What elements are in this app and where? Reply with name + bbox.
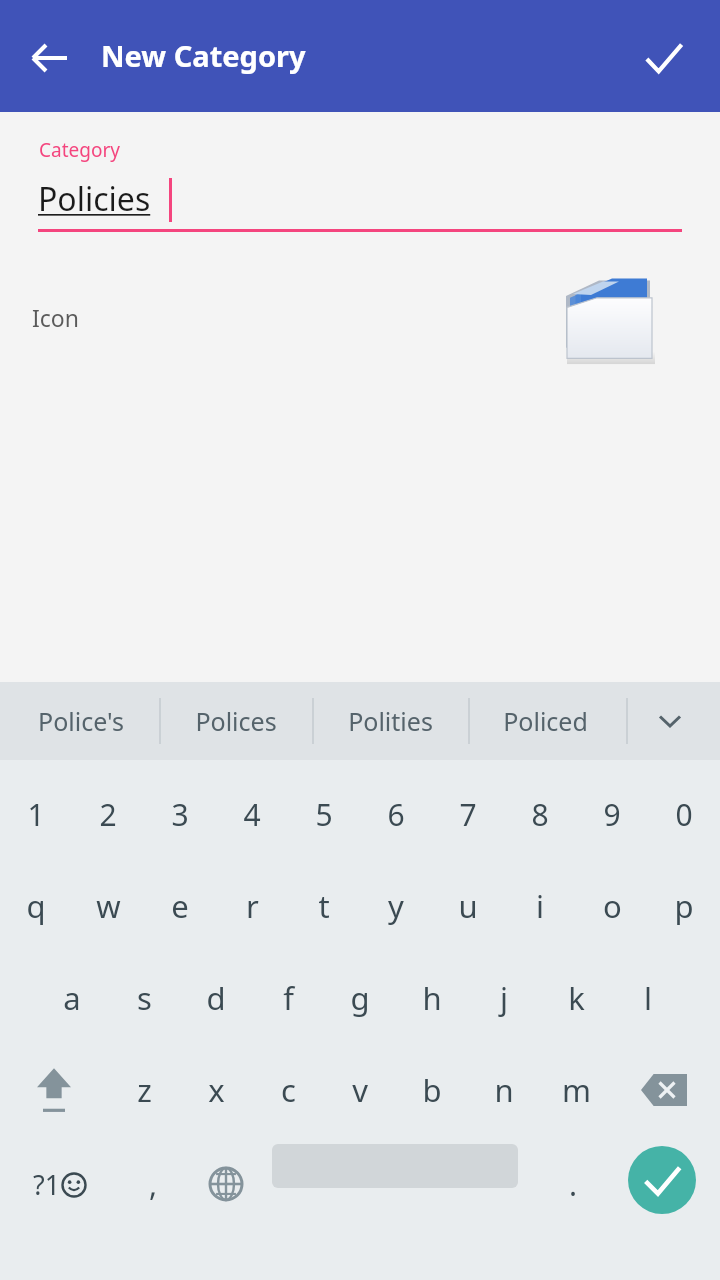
button[interactable]: 1 [0,768,72,860]
button[interactable]: Backspace [616,1044,712,1136]
staticText: s [137,977,152,1019]
button[interactable]: s [108,952,180,1044]
staticText: Polities [348,704,433,738]
staticText: n [494,1069,514,1111]
button[interactable]: m [540,1044,612,1136]
staticText: i [536,885,544,927]
button[interactable]: 7 [432,768,504,860]
button[interactable]: 0 [648,768,720,860]
staticText: w [96,885,121,927]
staticText: 0 [675,794,693,835]
staticText: e [171,885,189,927]
staticText: a [63,977,81,1019]
button[interactable]: i [504,860,576,952]
button[interactable]: a [36,952,108,1044]
button[interactable]: l [612,952,684,1044]
button[interactable]: . [538,1136,608,1232]
staticText: r [246,885,259,927]
button[interactable]: j [468,952,540,1044]
button[interactable]: x [180,1044,252,1136]
staticText: Polices [195,704,277,738]
staticText: f [283,977,294,1019]
button[interactable]: p [648,860,720,952]
staticText: h [422,977,442,1019]
button[interactable]: Back [22,30,78,86]
button[interactable]: 5 [288,768,360,860]
button[interactable]: Polices [164,682,308,760]
button[interactable]: Polities [318,682,462,760]
button[interactable]: o [576,860,648,952]
button[interactable]: More suggestions [640,696,700,746]
button[interactable]: Enter [628,1146,696,1214]
staticText: b [422,1069,442,1111]
staticText: j [500,977,508,1019]
button[interactable]: b [396,1044,468,1136]
button[interactable]: c [252,1044,324,1136]
staticText: 6 [387,794,405,835]
staticText: q [26,885,46,927]
staticText: Policies [38,177,151,221]
staticText: ?1 [33,1166,61,1203]
staticText: t [318,885,330,927]
staticText: . [569,1164,578,1205]
staticText: d [206,977,226,1019]
staticText: 7 [459,794,477,835]
staticText: m [562,1069,591,1111]
staticText: y [388,885,404,927]
button[interactable]: Police's [9,682,153,760]
button[interactable]: d [180,952,252,1044]
button[interactable]: v [324,1044,396,1136]
button[interactable]: g [324,952,396,1044]
button[interactable]: Symbols and emoji [4,1136,116,1232]
button[interactable]: f [252,952,324,1044]
button[interactable]: z [108,1044,180,1136]
staticText: , [149,1164,158,1205]
staticText: g [350,977,370,1019]
staticText: Policed [503,704,588,738]
button[interactable]: , [116,1136,190,1232]
staticText: 3 [171,794,189,835]
staticText: c [281,1069,296,1111]
button[interactable]: n [468,1044,540,1136]
button[interactable]: k [540,952,612,1044]
button[interactable]: Policed [473,682,617,760]
staticText: 8 [531,794,549,835]
staticText: u [458,885,478,927]
button[interactable]: e [144,860,216,952]
button[interactable]: t [288,860,360,952]
staticText: k [568,977,585,1019]
button[interactable]: 6 [360,768,432,860]
button[interactable]: Change language [186,1136,266,1232]
staticText: v [352,1069,368,1111]
button[interactable]: q [0,860,72,952]
staticText: 1 [27,794,45,835]
staticText: x [208,1069,225,1111]
staticText: Category [39,137,120,163]
staticText: p [674,885,694,927]
staticText: 2 [99,794,117,835]
button[interactable]: Save [632,28,694,90]
staticText: o [603,885,622,927]
button[interactable]: 4 [216,768,288,860]
staticText: 4 [243,794,261,835]
button[interactable]: r [216,860,288,952]
button[interactable]: Icon [0,262,720,372]
button[interactable]: Shift [6,1044,102,1136]
staticText: Police's [38,704,124,738]
button[interactable]: y [360,860,432,952]
button[interactable]: 2 [72,768,144,860]
staticText: 5 [315,794,333,835]
button[interactable]: h [396,952,468,1044]
staticText: z [137,1069,152,1111]
staticText: l [644,977,652,1019]
staticText: 9 [603,794,621,835]
button[interactable]: 3 [144,768,216,860]
button[interactable]: 8 [504,768,576,860]
button[interactable]: 9 [576,768,648,860]
button[interactable]: u [432,860,504,952]
staticText: New Category [101,36,306,75]
staticText: Icon [32,302,79,333]
button[interactable]: w [72,860,144,952]
